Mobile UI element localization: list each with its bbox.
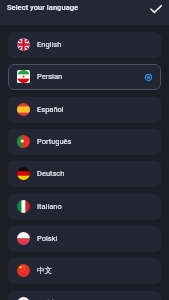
button[interactable]: 日本語 (8, 291, 161, 300)
staticText: Español (37, 105, 64, 114)
button[interactable]: Confirm (148, 1, 164, 17)
staticText: English (37, 40, 62, 49)
button[interactable]: Polski (8, 226, 161, 252)
button[interactable]: Español (8, 97, 161, 123)
button[interactable]: Italiano (8, 194, 161, 220)
staticText: Português (37, 137, 72, 146)
staticText: Select your language (7, 3, 79, 12)
button[interactable]: Persian (8, 64, 161, 90)
button[interactable]: Português (8, 129, 161, 155)
button[interactable]: 中文 (8, 258, 161, 284)
staticText: Polski (37, 234, 58, 243)
button[interactable]: English (8, 32, 161, 58)
staticText: 日本語 (37, 299, 60, 300)
staticText: Deutsch (37, 169, 65, 178)
button[interactable]: Deutsch (8, 161, 161, 187)
staticText: 中文 (37, 266, 52, 275)
staticText: Persian (37, 72, 63, 81)
staticText: Italiano (37, 202, 62, 211)
